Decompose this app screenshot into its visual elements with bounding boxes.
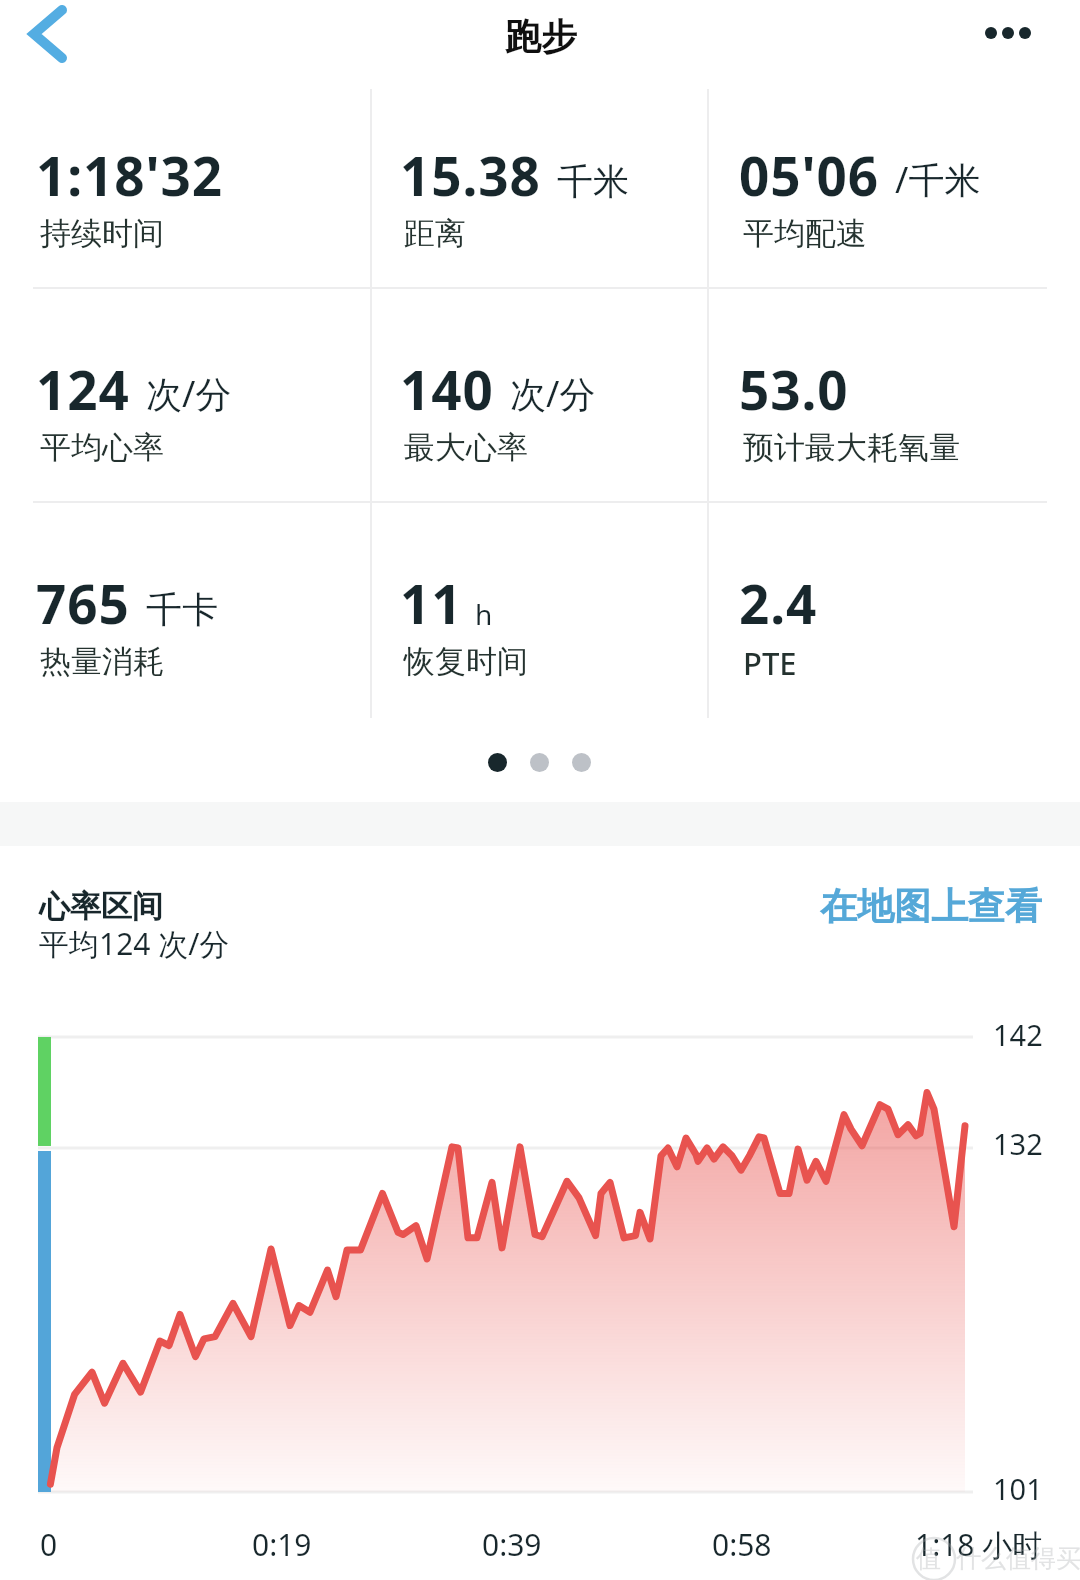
button[interactable]: Page 3 bbox=[572, 753, 591, 772]
staticText: 千米 bbox=[557, 159, 629, 204]
staticText: 101 bbox=[993, 1469, 1043, 1508]
staticText: h bbox=[475, 595, 493, 633]
staticText: 1:18 小时 bbox=[915, 1524, 1043, 1565]
staticText: 什么值得买 bbox=[956, 1543, 1080, 1574]
staticText: 恢复时间 bbox=[404, 642, 528, 681]
staticText: 2.4 bbox=[739, 567, 818, 639]
staticText: 次/分 bbox=[146, 369, 232, 418]
staticText: 0:58 bbox=[712, 1524, 772, 1565]
staticText: 平均124 次/分 bbox=[39, 923, 230, 964]
button[interactable]: Back bbox=[8, 0, 88, 72]
staticText: /千米 bbox=[895, 155, 981, 204]
button[interactable]: Page 2 bbox=[530, 753, 549, 772]
staticText: 765 bbox=[36, 567, 130, 639]
staticText: 在地图上查看 bbox=[820, 883, 1042, 930]
staticText: 热量消耗 bbox=[40, 642, 164, 681]
staticText: 0:19 bbox=[252, 1524, 312, 1565]
staticText: 124 bbox=[36, 353, 130, 425]
button[interactable]: Page 1 bbox=[488, 753, 507, 772]
staticText: 平均配速 bbox=[743, 214, 867, 253]
staticText: PTE bbox=[743, 642, 797, 684]
staticText: 持续时间 bbox=[40, 214, 164, 253]
staticText: 132 bbox=[993, 1124, 1043, 1163]
staticText: 跑步 bbox=[505, 14, 577, 59]
staticText: 142 bbox=[993, 1015, 1043, 1054]
staticText: 平均心率 bbox=[40, 428, 164, 467]
button[interactable]: More options bbox=[958, 0, 1058, 66]
staticText: 心率区间 bbox=[39, 887, 163, 926]
staticText: 次/分 bbox=[510, 369, 596, 418]
staticText: 53.0 bbox=[739, 353, 849, 425]
staticText: 11 bbox=[400, 567, 463, 639]
staticText: 15.38 bbox=[400, 139, 541, 211]
staticText: 最大心率 bbox=[404, 428, 528, 467]
staticText: 05'06 bbox=[739, 139, 879, 211]
button[interactable]: 在地图上查看 bbox=[800, 874, 1062, 938]
staticText: 预计最大耗氧量 bbox=[743, 428, 960, 467]
staticText: 0 bbox=[40, 1524, 58, 1565]
staticText: 140 bbox=[400, 353, 494, 425]
staticText: 千卡 bbox=[146, 587, 218, 632]
staticText: 1:18'32 bbox=[36, 139, 223, 211]
staticText: 0:39 bbox=[482, 1524, 542, 1565]
staticText: 距离 bbox=[404, 214, 466, 253]
staticText: 值 bbox=[916, 1543, 941, 1574]
